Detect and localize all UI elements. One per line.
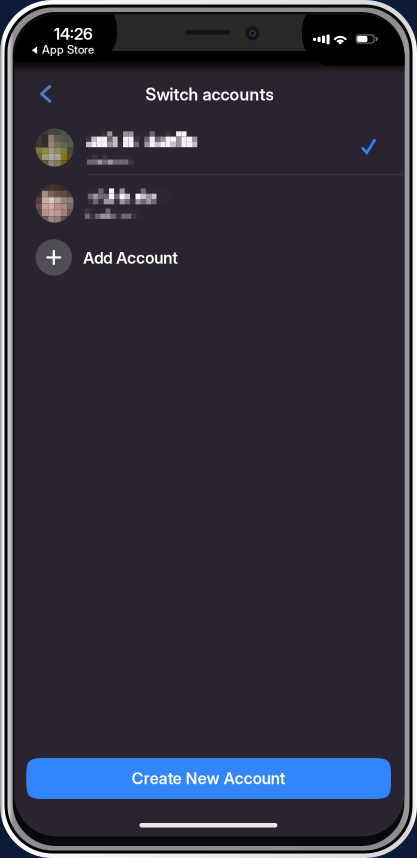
button[interactable] [14,175,404,232]
button[interactable]: Back [24,72,68,116]
button[interactable]: Add Account [14,232,404,284]
staticText: Switch accounts [145,84,273,104]
staticText: App Store [42,43,94,57]
button[interactable] [14,121,404,174]
button[interactable]: Create New Account [26,758,391,799]
staticText: Create New Account [132,769,286,788]
staticText: 14:26 [54,24,93,44]
staticText: Add Account [83,248,178,268]
